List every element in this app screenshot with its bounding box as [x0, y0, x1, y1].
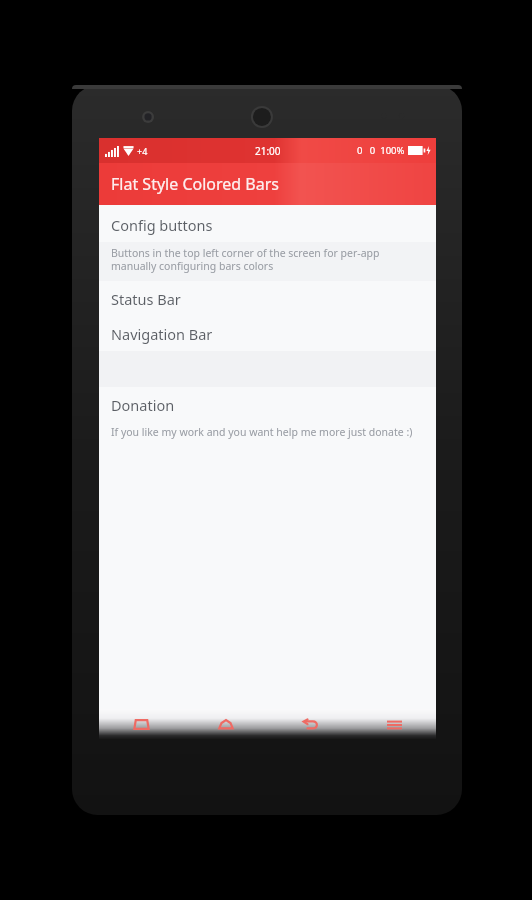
button[interactable]: Home [184, 709, 268, 740]
staticText: If you like my work and you want help me… [111, 425, 413, 439]
staticText: Config buttons [111, 215, 213, 235]
button[interactable]: Config buttons [99, 207, 436, 242]
button[interactable]: If you like my work and you want help me… [99, 422, 436, 449]
staticText: Navigation Bar [111, 324, 213, 344]
button[interactable]: Menu [352, 709, 436, 740]
staticText: +4 [137, 145, 148, 157]
button[interactable]: Flat Style Colored Bars [99, 163, 436, 205]
button[interactable]: Recent apps [99, 709, 184, 740]
button[interactable]: Buttons in the top left corner of the sc… [99, 242, 436, 281]
staticText: Status Bar [111, 289, 181, 309]
staticText: Buttons in the top left corner of the sc… [111, 246, 380, 273]
staticText: Donation [111, 395, 175, 415]
staticText: 0 0 100% [357, 144, 405, 157]
button[interactable]: Navigation Bar [99, 316, 436, 351]
button[interactable]: Donation [99, 387, 436, 422]
button[interactable]: Back [268, 709, 352, 740]
button[interactable]: Status Bar [99, 281, 436, 316]
staticText: Flat Style Colored Bars [111, 173, 279, 195]
staticText: 21:00 [255, 144, 281, 158]
